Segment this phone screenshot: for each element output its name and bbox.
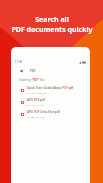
staticText: APG PDF.pdf: [27, 98, 45, 102]
button[interactable]: Back: [11, 67, 90, 75]
button[interactable]: Quick Start Guide About PDF.pdf: [11, 84, 90, 96]
staticText: Search all: [35, 15, 69, 25]
staticText: 512 KB · 12 Mar: [27, 103, 45, 106]
staticText: PDF: [30, 69, 36, 73]
staticText: 1.8 MB · Yesterday: [27, 91, 48, 94]
button[interactable]: APG PDF.pdf: [11, 96, 90, 108]
other: Back: [21, 70, 23, 72]
staticText: PDF documents quickly: [11, 25, 93, 35]
staticText: Searching "PDF" files: [19, 78, 45, 82]
staticText: 11:58: [15, 60, 23, 64]
staticText: Quick Start Guide About PDF.pdf: [27, 86, 74, 90]
staticText: 2.4 MB · 04 Mar: [27, 115, 45, 118]
button[interactable]: APG PDF Urdu Text.pdf: [11, 108, 90, 120]
staticText: APG PDF Urdu Text.pdf: [27, 110, 60, 114]
